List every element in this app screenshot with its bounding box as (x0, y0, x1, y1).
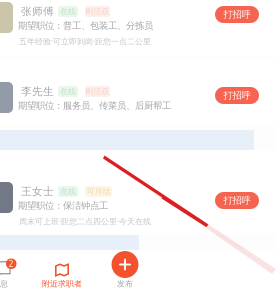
staticText: 在线 (60, 187, 76, 196)
staticText: 王女士 (21, 185, 54, 198)
button[interactable]: 发布 (94, 250, 156, 288)
button[interactable]: 附近求职者 (31, 250, 93, 288)
staticText: 五年经验·可立即到岗·距您一点二公里 (19, 36, 151, 47)
button[interactable]: 张师傅 (0, 0, 276, 56)
staticText: 期望职位：服务员、传菜员、后厨帮工 (18, 100, 171, 111)
staticText: 期望职位：保洁钟点工 (18, 200, 108, 211)
button[interactable]: 消息 (0, 250, 31, 288)
button[interactable]: 王女士 (0, 150, 276, 234)
staticText: 张师傅 (21, 5, 54, 18)
staticText: 李先生 (21, 85, 54, 98)
staticText: 打招呼 (223, 9, 250, 20)
staticText: 期望职位：普工、包装工、分拣员 (18, 20, 153, 31)
staticText: 刚活跃 (85, 7, 109, 16)
staticText: 周末可上班·距您二点四公里·今天在线 (19, 216, 151, 227)
staticText: 在线 (60, 87, 76, 96)
staticText: 附近求职者 (42, 279, 82, 288)
staticText: 消息 (0, 279, 8, 288)
staticText: 在线 (60, 7, 76, 16)
staticText: 打招呼 (223, 195, 250, 206)
button[interactable]: 李先生 (0, 58, 276, 126)
staticText: 2 (9, 258, 14, 269)
staticText: 可月结 (86, 187, 110, 196)
staticText: 发布 (117, 279, 133, 288)
staticText: 刚活跃 (85, 87, 109, 96)
staticText: 打招呼 (223, 90, 250, 101)
